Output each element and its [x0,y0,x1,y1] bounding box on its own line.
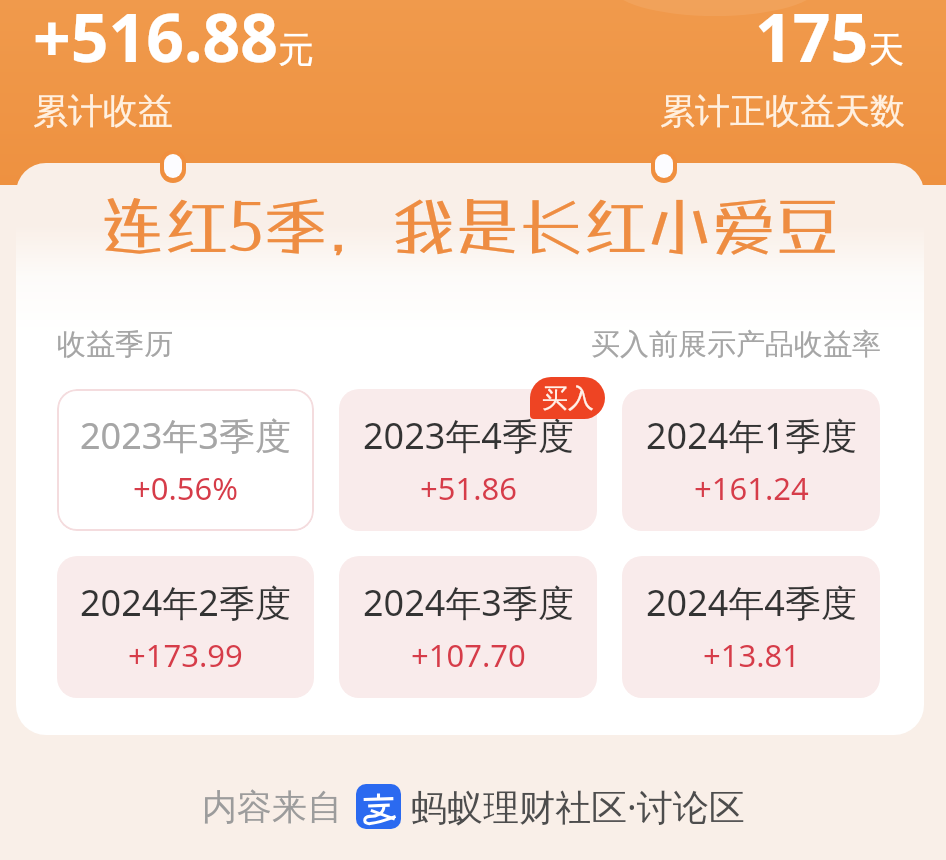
button[interactable]: 买入 [530,377,605,419]
staticText: +173.99 [128,634,243,676]
staticText: 2024年2季度 [80,578,291,627]
button[interactable]: 2023年4季度 [339,389,597,531]
staticText: 2024年1季度 [646,411,857,460]
staticText: +51.86 [420,467,517,509]
staticText: 175天 [755,0,905,81]
button[interactable]: 2023年3季度 [57,389,314,531]
staticText: 买入前展示产品收益率 [591,326,881,363]
staticText: 2023年4季度 [363,411,574,460]
staticText: 内容来自 [202,785,342,829]
staticText: 2024年4季度 [646,578,857,627]
staticText: +13.81 [703,634,800,676]
staticText: 2024年3季度 [363,578,574,627]
button[interactable]: Alipay [356,784,401,829]
button[interactable]: 2024年2季度 [57,556,314,698]
staticText: +107.70 [411,634,526,676]
staticText: +0.56% [133,467,238,509]
staticText: +516.88元 [33,0,315,81]
staticText: 2023年3季度 [80,411,291,460]
staticText: 收益季历 [57,326,173,363]
button[interactable]: 2024年4季度 [622,556,880,698]
staticText: 买入 [542,382,594,415]
staticText: 蚂蚁理财社区·讨论区 [411,782,745,831]
staticText: +161.24 [694,467,809,509]
staticText: 累计收益 [33,89,173,133]
button[interactable]: 2024年1季度 [622,389,880,531]
staticText: 累计正收益天数 [660,89,905,133]
button[interactable]: 2024年3季度 [339,556,597,698]
staticText: 连红5季，我是长红小爱豆 [16,188,924,264]
